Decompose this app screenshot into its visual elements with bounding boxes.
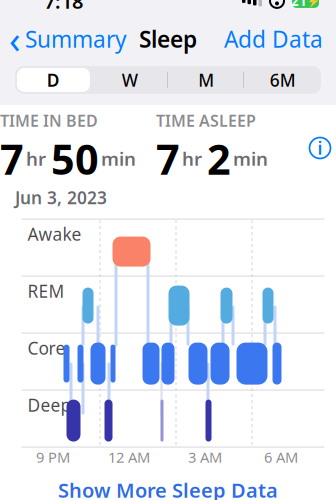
staticText: i [317, 136, 322, 159]
staticText: ⚡ [307, 0, 320, 7]
staticText: 21 [291, 0, 307, 10]
staticText: Summary [25, 24, 127, 54]
button[interactable]: Show More Sleep Data [0, 469, 336, 500]
staticText: 7:18 [44, 0, 83, 14]
button[interactable]: Add Data [224, 19, 336, 59]
staticText: REM [27, 280, 64, 303]
staticText: hr [182, 146, 202, 171]
staticText: TIME ASLEEP [156, 110, 256, 131]
button[interactable]: About sleep stages [304, 132, 336, 164]
staticText: Awake [27, 223, 81, 246]
staticText: D [47, 68, 60, 91]
staticText: 12 AM [108, 447, 150, 467]
staticText: 9 PM [36, 447, 70, 467]
staticText: hr [26, 146, 46, 171]
button[interactable]: W [91, 66, 168, 94]
staticText: min [233, 146, 268, 171]
staticText: 3 AM [188, 447, 222, 467]
button[interactable]: M [168, 66, 244, 94]
staticText: 2 [207, 131, 231, 186]
staticText: W [122, 68, 138, 91]
staticText: TIME IN BED [0, 110, 98, 131]
staticText: 6M [270, 68, 296, 91]
staticText: Show More Sleep Data [58, 477, 278, 500]
staticText: 50 [51, 131, 99, 186]
button[interactable]: 6M [244, 66, 321, 94]
staticText: 6 AM [264, 447, 298, 467]
staticText: M [198, 68, 214, 91]
staticText: Add Data [224, 24, 323, 54]
button[interactable]: ‹ [0, 9, 127, 69]
staticText: min [101, 146, 136, 171]
staticText: 7 [0, 131, 24, 186]
staticText: ‹ [9, 14, 21, 64]
staticText: Jun 3, 2023 [15, 186, 107, 209]
staticText: 7 [156, 131, 180, 186]
staticText: Sleep [139, 24, 197, 54]
staticText: Core [27, 337, 65, 360]
button[interactable]: D [15, 66, 91, 94]
staticText: Deep [27, 394, 71, 417]
